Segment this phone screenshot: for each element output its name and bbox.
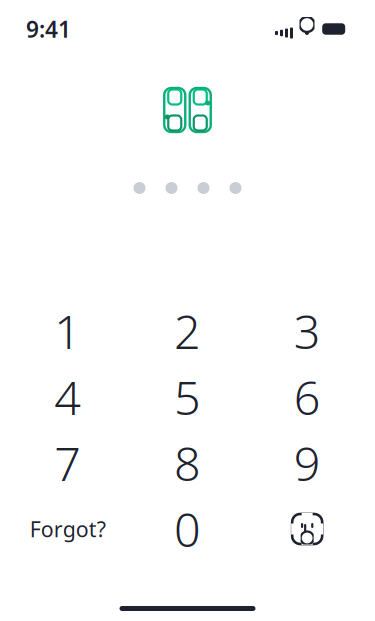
button[interactable]: Forgot?: [8, 496, 128, 562]
staticText: 0: [174, 498, 201, 560]
staticText: 9: [294, 432, 321, 494]
staticText: 1: [54, 300, 81, 362]
button[interactable]: 6: [247, 364, 367, 430]
staticText: 7: [54, 432, 81, 494]
staticText: 8: [174, 432, 201, 494]
button[interactable]: 1: [8, 298, 128, 364]
staticText: 5: [174, 366, 201, 428]
button[interactable]: Face ID: [247, 496, 367, 562]
button[interactable]: 2: [128, 298, 247, 364]
staticText: 4: [54, 366, 81, 428]
button[interactable]: 9: [247, 430, 367, 496]
staticText: 2: [174, 300, 201, 362]
staticText: Forgot?: [30, 515, 106, 543]
button[interactable]: 0: [128, 496, 247, 562]
button[interactable]: 3: [247, 298, 367, 364]
staticText: 3: [294, 300, 321, 362]
button[interactable]: 8: [128, 430, 247, 496]
button[interactable]: 4: [8, 364, 128, 430]
button[interactable]: 5: [128, 364, 247, 430]
staticText: 9:41: [26, 14, 71, 44]
button[interactable]: 7: [8, 430, 128, 496]
staticText: 6: [294, 366, 321, 428]
